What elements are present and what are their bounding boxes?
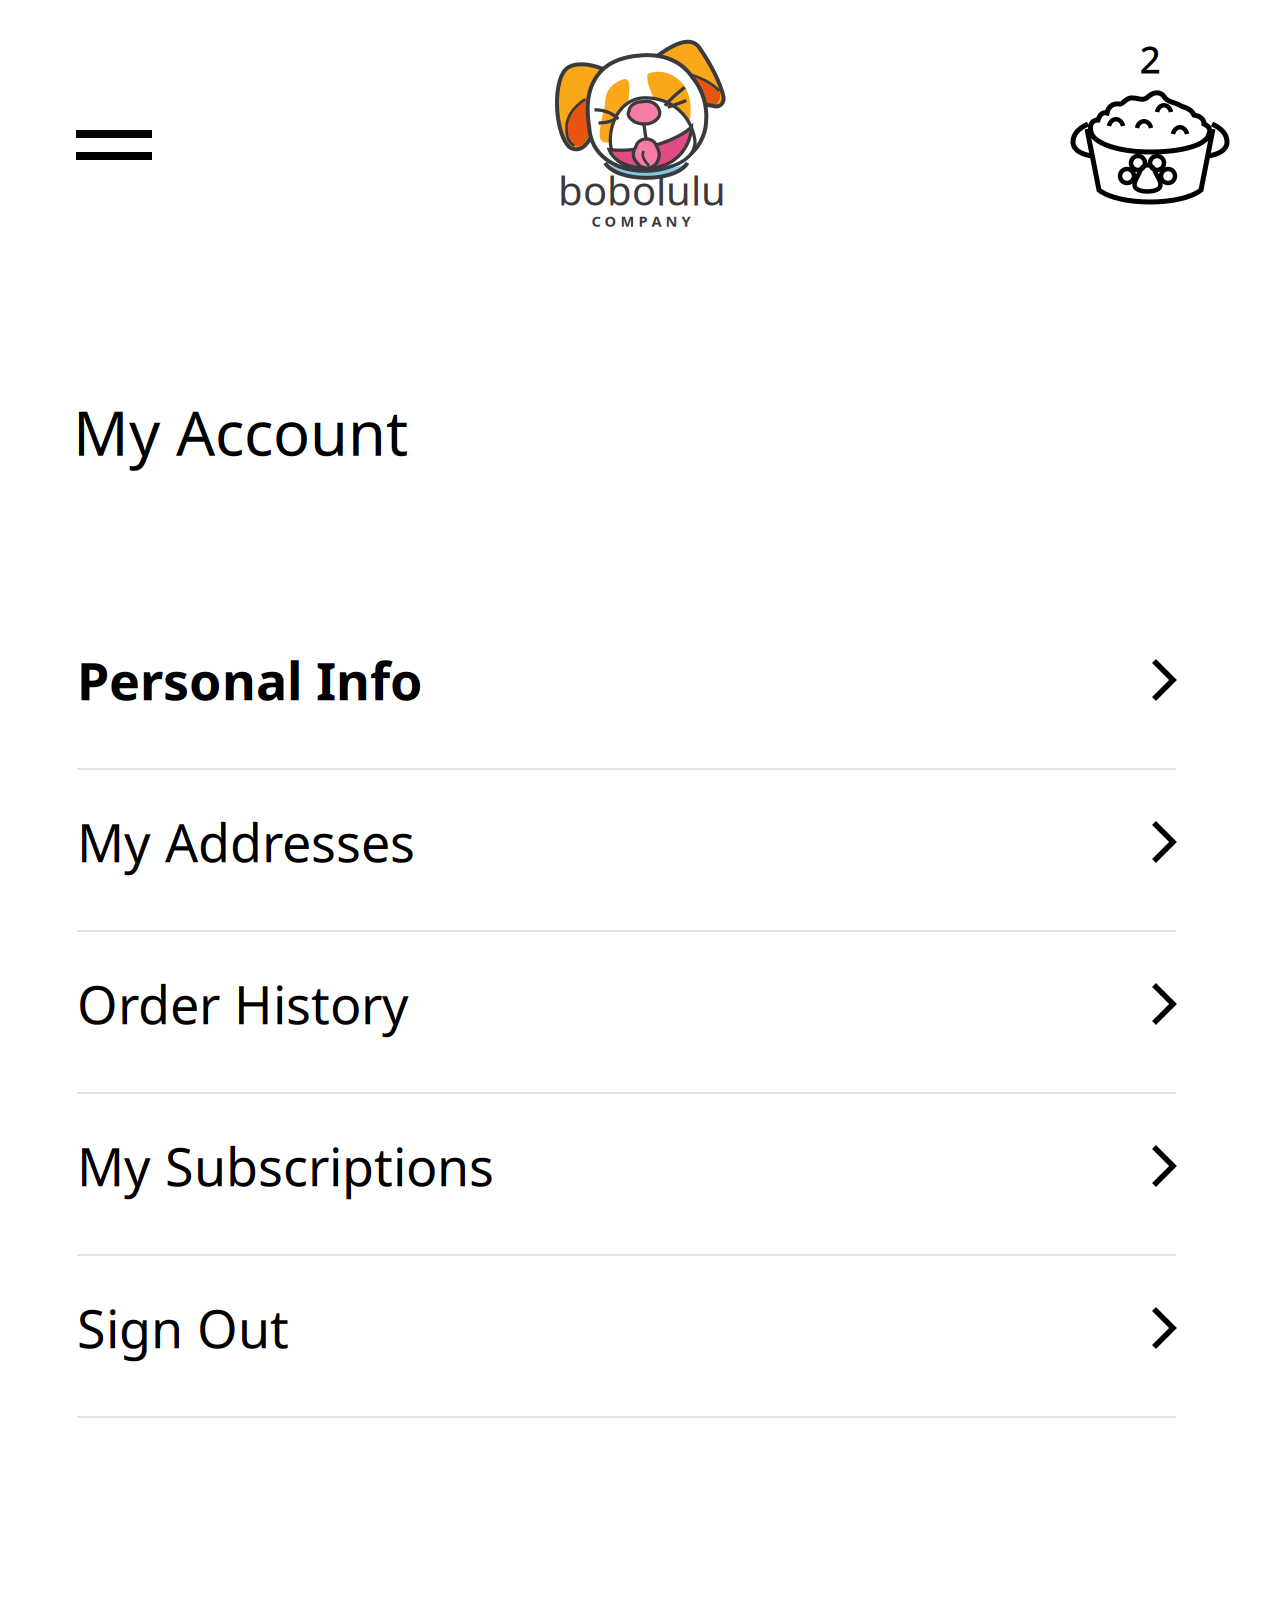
staticText: Personal Info: [77, 645, 423, 715]
button[interactable]: My Subscriptions: [77, 1094, 1176, 1256]
staticText: My Addresses: [77, 807, 415, 877]
staticText: bobolulu: [558, 163, 726, 216]
button[interactable]: Order History: [77, 932, 1176, 1094]
staticText: My Account: [73, 391, 408, 473]
button[interactable]: bobolulu Company, home: [536, 50, 762, 250]
button[interactable]: Sign Out: [77, 1256, 1176, 1418]
staticText: Order History: [77, 969, 409, 1039]
button[interactable]: Cart, 2 items: [1065, 40, 1235, 206]
staticText: 2: [1139, 34, 1160, 84]
button[interactable]: Personal Info: [77, 608, 1176, 770]
button[interactable]: Menu: [76, 123, 152, 167]
staticText: My Subscriptions: [77, 1131, 494, 1201]
staticText: Sign Out: [77, 1293, 289, 1363]
button[interactable]: My Addresses: [77, 770, 1176, 932]
staticText: C O M P A N Y: [591, 211, 690, 231]
